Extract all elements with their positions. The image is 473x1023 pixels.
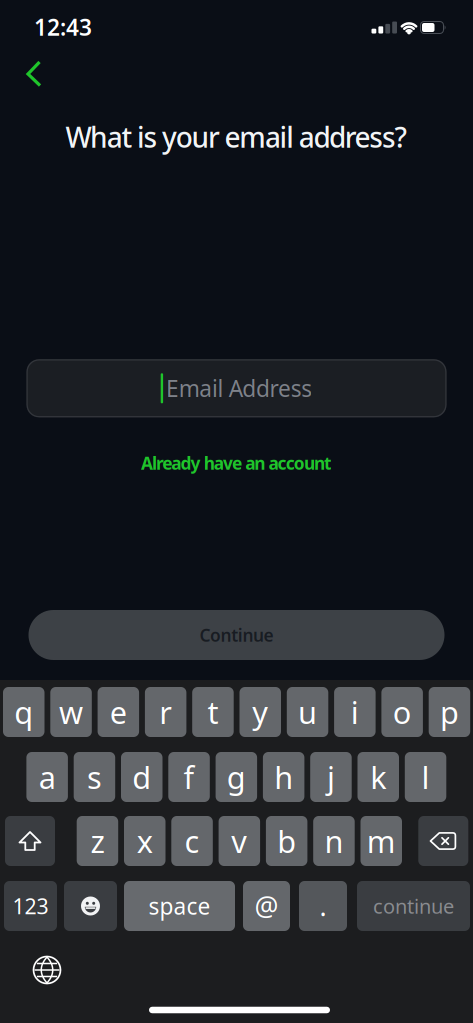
button[interactable]: 123: [4, 881, 57, 931]
staticText: y: [252, 692, 268, 732]
button[interactable]: d: [121, 752, 162, 802]
staticText: @: [254, 888, 278, 924]
button[interactable]: w: [50, 687, 92, 737]
staticText: p: [440, 692, 459, 732]
staticText: continue: [373, 893, 454, 919]
button[interactable]: r: [145, 687, 186, 737]
staticText: h: [274, 757, 293, 797]
staticText: x: [137, 821, 153, 861]
button[interactable]: Next keyboard: [33, 956, 60, 983]
button[interactable]: h: [263, 752, 304, 802]
button[interactable]: k: [357, 752, 399, 802]
staticText: space: [148, 891, 210, 921]
staticText: s: [87, 757, 102, 797]
staticText: What is your email address?: [65, 118, 408, 156]
staticText: q: [14, 692, 33, 732]
button[interactable]: @: [243, 881, 290, 931]
button[interactable]: p: [429, 687, 470, 737]
button[interactable]: Email Address: [26, 359, 446, 417]
staticText: d: [132, 757, 151, 797]
button[interactable]: continue: [357, 881, 470, 931]
button[interactable]: o: [381, 687, 423, 737]
staticText: g: [227, 757, 246, 797]
staticText: u: [298, 692, 317, 732]
staticText: m: [367, 821, 396, 861]
staticText: b: [277, 821, 296, 861]
button[interactable]: f: [168, 752, 210, 802]
button[interactable]: x: [124, 816, 165, 866]
button[interactable]: n: [313, 816, 355, 866]
button[interactable]: Continue: [28, 610, 444, 660]
button[interactable]: Already have an account: [141, 451, 332, 474]
button[interactable]: c: [171, 816, 213, 866]
button[interactable]: q: [3, 687, 44, 737]
button[interactable]: Shift: [5, 816, 55, 866]
button[interactable]: v: [219, 816, 260, 866]
button[interactable]: u: [287, 687, 328, 737]
staticText: Email Address: [166, 373, 312, 403]
staticText: z: [90, 821, 104, 861]
staticText: v: [231, 821, 247, 861]
button[interactable]: y: [239, 687, 281, 737]
staticText: .: [319, 888, 326, 924]
button[interactable]: e: [98, 687, 139, 737]
button[interactable]: g: [216, 752, 257, 802]
staticText: Already have an account: [141, 451, 332, 474]
button[interactable]: l: [405, 752, 446, 802]
staticText: r: [159, 692, 172, 732]
button[interactable]: z: [77, 816, 118, 866]
button[interactable]: space: [124, 881, 235, 931]
staticText: Continue: [199, 623, 274, 646]
staticText: l: [421, 757, 429, 797]
staticText: e: [110, 692, 127, 732]
button[interactable]: Back: [14, 51, 58, 95]
button[interactable]: b: [266, 816, 307, 866]
button[interactable]: m: [360, 816, 402, 866]
button[interactable]: i: [334, 687, 376, 737]
staticText: c: [185, 821, 200, 861]
staticText: t: [207, 692, 218, 732]
staticText: 123: [12, 892, 48, 920]
button[interactable]: Delete: [418, 816, 468, 866]
button[interactable]: j: [310, 752, 352, 802]
button[interactable]: t: [192, 687, 234, 737]
staticText: f: [183, 757, 194, 797]
staticText: a: [39, 757, 56, 797]
button[interactable]: .: [299, 881, 347, 931]
button[interactable]: Emoji: [64, 881, 117, 931]
staticText: i: [351, 692, 359, 732]
staticText: k: [370, 757, 386, 797]
staticText: 12:43: [34, 12, 92, 42]
button[interactable]: a: [26, 752, 68, 802]
staticText: n: [324, 821, 343, 861]
staticText: w: [59, 692, 83, 732]
staticText: o: [393, 692, 412, 732]
button[interactable]: s: [74, 752, 115, 802]
staticText: j: [327, 757, 335, 797]
